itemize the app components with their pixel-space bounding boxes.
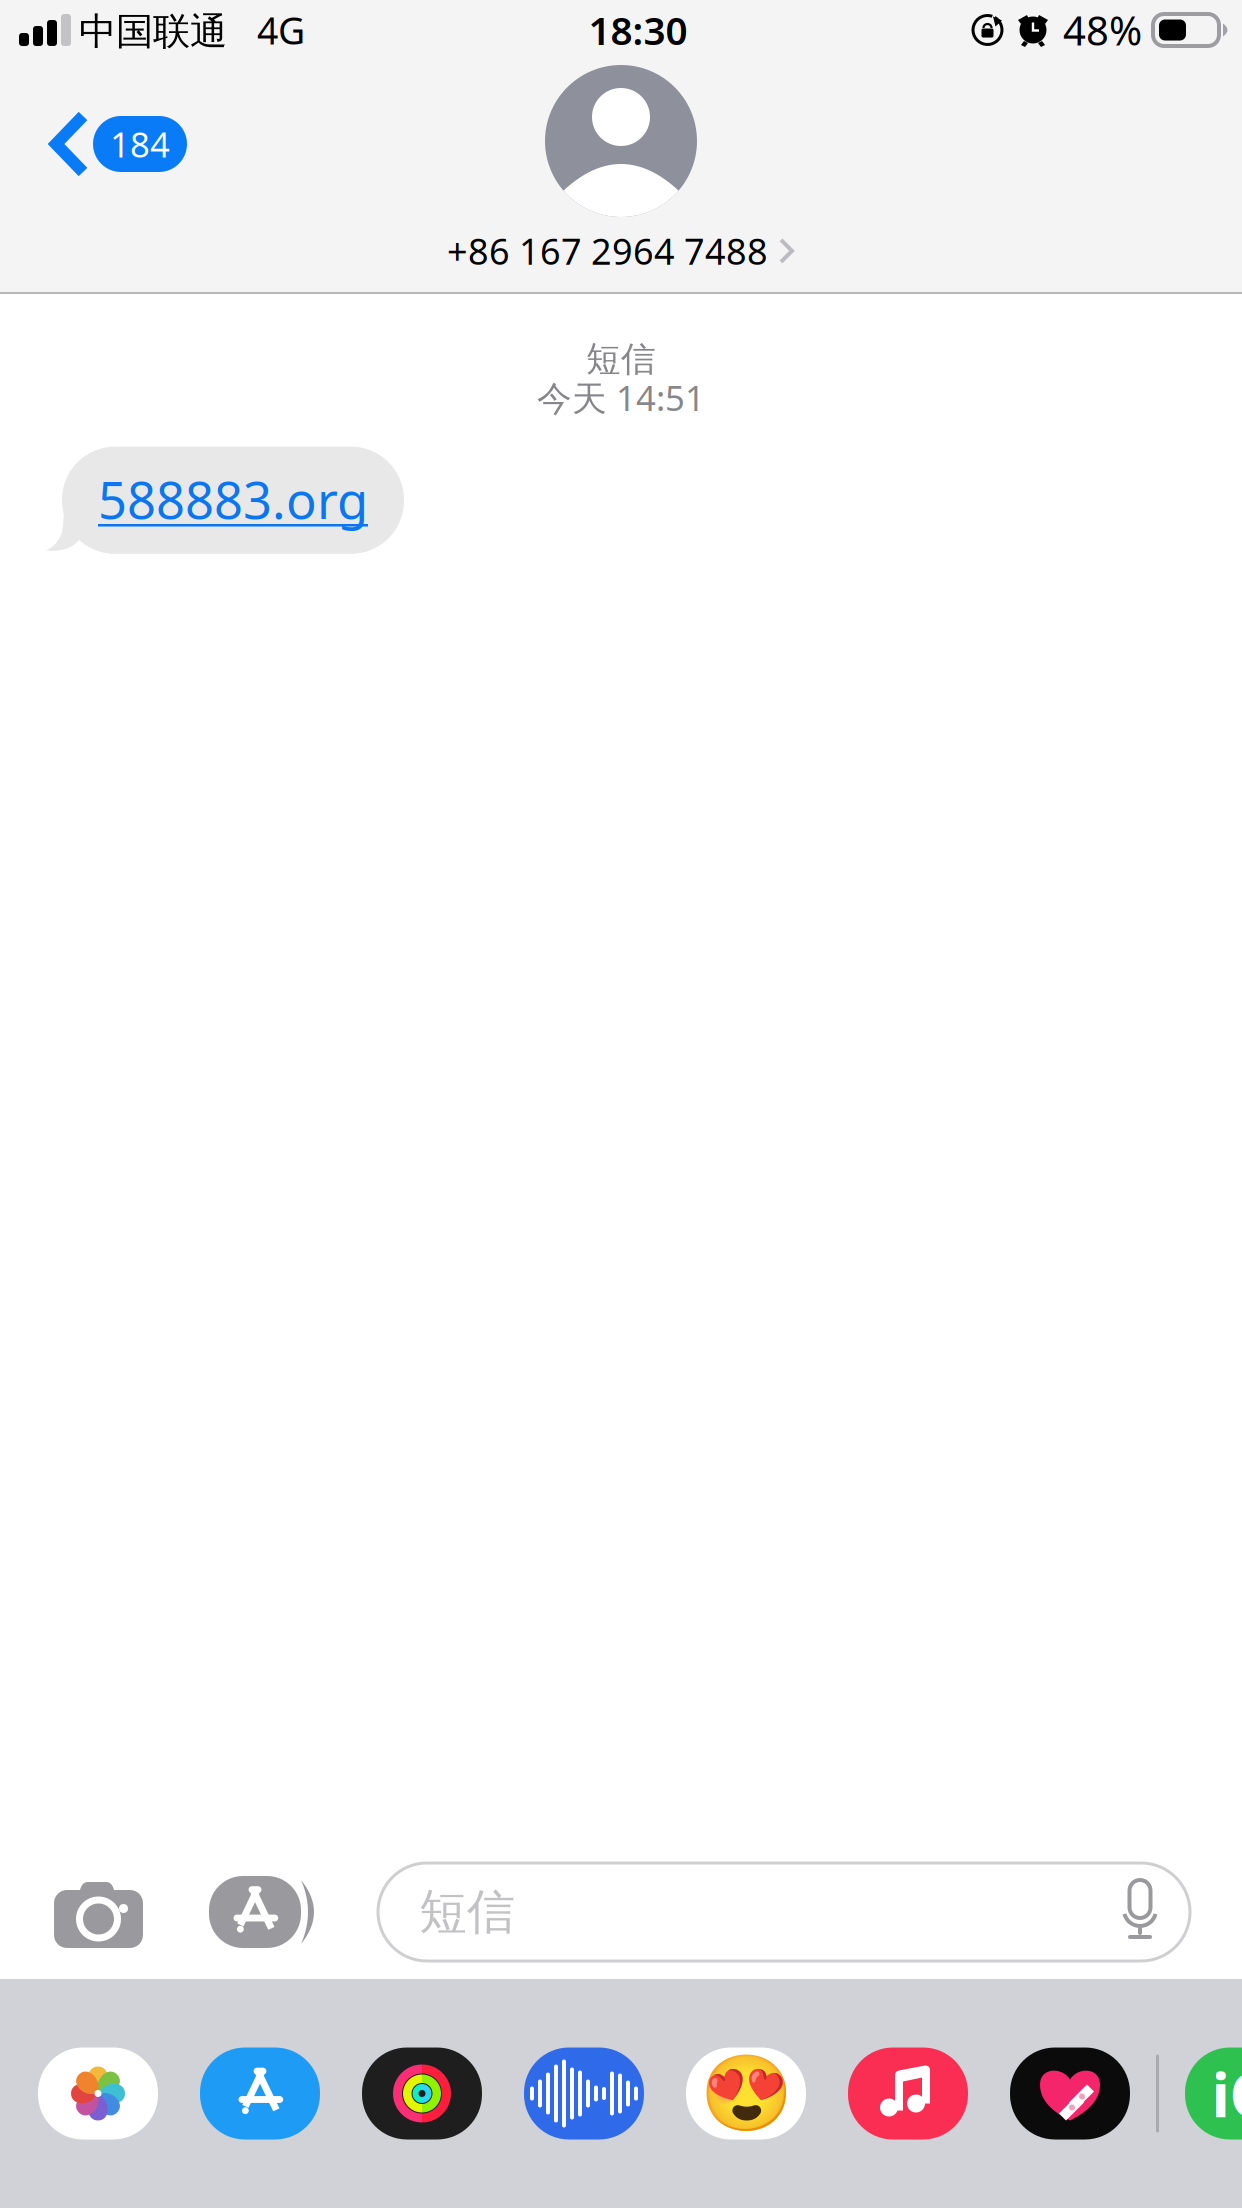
staticText: 48% — [1063, 3, 1142, 56]
button[interactable]: Health — [1010, 2047, 1130, 2139]
button[interactable]: Music — [848, 2047, 968, 2139]
staticText: 588883.org — [98, 466, 368, 533]
button[interactable]: Photos — [38, 2047, 158, 2139]
button[interactable]: Memoji stickers — [686, 2047, 806, 2139]
staticText: 今天 14:51 — [537, 375, 705, 421]
staticText: 短信 — [586, 338, 656, 381]
button[interactable]: Camera — [54, 1876, 143, 1948]
button[interactable]: More apps — [1185, 2047, 1242, 2139]
staticText: +86 167 2964 7488 — [447, 227, 768, 275]
button[interactable]: Back, 184 unread — [0, 60, 211, 198]
staticText: 18:30 — [588, 4, 687, 56]
staticText: 中国联通 4G — [79, 5, 305, 55]
staticText: iQ — [1211, 2053, 1242, 2134]
button[interactable]: Contact details — [437, 221, 805, 281]
staticText: 短信 — [419, 1882, 515, 1941]
button[interactable]: App Store — [209, 1876, 321, 1948]
button[interactable]: Message field — [378, 1863, 1190, 1961]
button[interactable]: 588883.org — [62, 447, 404, 554]
button[interactable]: Fitness — [362, 2047, 482, 2139]
staticText: 184 — [110, 121, 170, 167]
button[interactable]: App Store — [200, 2047, 320, 2139]
staticText: 😍 — [699, 2051, 792, 2136]
button[interactable]: Audio message — [524, 2047, 644, 2139]
